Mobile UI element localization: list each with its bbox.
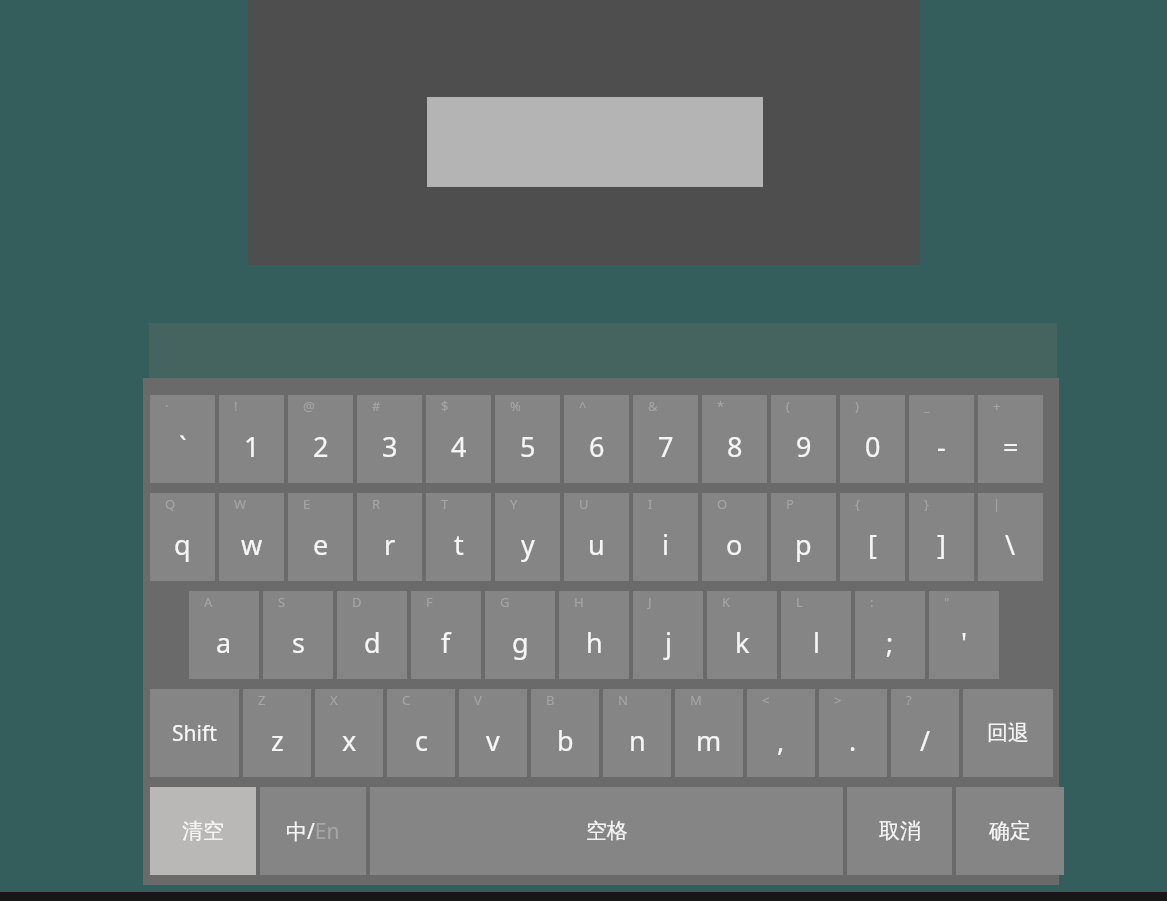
staticText: P — [786, 495, 794, 513]
staticText: g — [512, 624, 529, 661]
button[interactable]: " — [929, 591, 999, 679]
button[interactable]: · — [150, 395, 215, 483]
button[interactable]: ) — [840, 395, 905, 483]
button[interactable]: @ — [288, 395, 353, 483]
staticText: S — [278, 593, 286, 611]
button[interactable]: { — [840, 493, 905, 581]
staticText: F — [426, 593, 433, 611]
staticText: > — [834, 691, 842, 709]
button[interactable]: W — [219, 493, 284, 581]
button[interactable]: : — [855, 591, 925, 679]
staticText: 3 — [382, 428, 398, 465]
button[interactable]: Y — [495, 493, 560, 581]
button[interactable]: L — [781, 591, 851, 679]
button[interactable]: E — [288, 493, 353, 581]
button[interactable]: < — [747, 689, 815, 777]
staticText: < — [762, 691, 770, 709]
button[interactable]: % — [495, 395, 560, 483]
button[interactable]: J — [633, 591, 703, 679]
staticText: k — [735, 624, 750, 661]
staticText: ( — [786, 397, 790, 415]
staticText: T — [441, 495, 449, 513]
button[interactable]: D — [337, 591, 407, 679]
staticText: B — [546, 691, 555, 709]
button[interactable]: } — [909, 493, 974, 581]
button[interactable]: I — [633, 493, 698, 581]
staticText: * — [717, 397, 725, 415]
button[interactable]: R — [357, 493, 422, 581]
button[interactable]: G — [485, 591, 555, 679]
staticText: x — [342, 722, 357, 759]
staticText: $ — [441, 397, 449, 415]
button[interactable]: > — [819, 689, 887, 777]
button[interactable]: C — [387, 689, 455, 777]
button[interactable]: # — [357, 395, 422, 483]
staticText: · — [165, 397, 169, 415]
staticText: a — [216, 624, 232, 661]
staticText: N — [618, 691, 628, 709]
staticText: w — [241, 526, 263, 563]
staticText: z — [271, 722, 284, 759]
button[interactable]: M — [675, 689, 743, 777]
staticText: 取消 — [879, 818, 921, 844]
button[interactable]: H — [559, 591, 629, 679]
button[interactable]: V — [459, 689, 527, 777]
button[interactable]: & — [633, 395, 698, 483]
staticText: Z — [258, 691, 266, 709]
button[interactable]: + — [978, 395, 1043, 483]
button[interactable]: ! — [219, 395, 284, 483]
staticText: M — [690, 691, 702, 709]
button[interactable]: 空格 — [370, 787, 843, 875]
staticText: ) — [855, 397, 859, 415]
staticText: m — [696, 722, 722, 759]
button[interactable]: ^ — [564, 395, 629, 483]
button[interactable]: * — [702, 395, 767, 483]
staticText: X — [330, 691, 338, 709]
button[interactable]: ( — [771, 395, 836, 483]
button[interactable]: U — [564, 493, 629, 581]
button[interactable]: 回退 — [963, 689, 1053, 777]
button[interactable]: Shift — [150, 689, 239, 777]
button[interactable]: B — [531, 689, 599, 777]
staticText: I — [648, 495, 653, 513]
staticText: \ — [1005, 526, 1016, 563]
button[interactable]: _ — [909, 395, 974, 483]
button[interactable]: T — [426, 493, 491, 581]
staticText: # — [372, 397, 381, 415]
button[interactable]: A — [189, 591, 259, 679]
staticText: e — [313, 526, 329, 563]
staticText: c — [415, 722, 428, 759]
staticText: V — [474, 691, 482, 709]
staticText: R — [372, 495, 381, 513]
staticText: 空格 — [586, 818, 628, 844]
button[interactable]: X — [315, 689, 383, 777]
staticText: 7 — [658, 428, 674, 465]
staticText: - — [937, 428, 946, 465]
staticText: G — [500, 593, 510, 611]
button[interactable]: F — [411, 591, 481, 679]
button[interactable]: 中/En — [260, 787, 366, 875]
button[interactable]: K — [707, 591, 777, 679]
staticText: v — [486, 722, 500, 759]
button[interactable]: 确定 — [956, 787, 1064, 875]
button[interactable]: 清空 — [150, 787, 256, 875]
staticText: : — [870, 593, 874, 611]
button[interactable]: Z — [243, 689, 311, 777]
button[interactable]: S — [263, 591, 333, 679]
staticText: = — [1003, 428, 1019, 465]
button[interactable]: | — [978, 493, 1043, 581]
button[interactable]: O — [702, 493, 767, 581]
staticText: O — [717, 495, 728, 513]
button[interactable]: $ — [426, 395, 491, 483]
staticText: [ — [868, 526, 877, 563]
button[interactable]: ? — [891, 689, 959, 777]
staticText: q — [174, 526, 191, 563]
button[interactable]: 取消 — [847, 787, 952, 875]
button[interactable]: P — [771, 493, 836, 581]
staticText: 1 — [244, 428, 260, 465]
staticText: } — [924, 495, 929, 513]
button[interactable]: N — [603, 689, 671, 777]
button[interactable]: Q — [150, 493, 215, 581]
